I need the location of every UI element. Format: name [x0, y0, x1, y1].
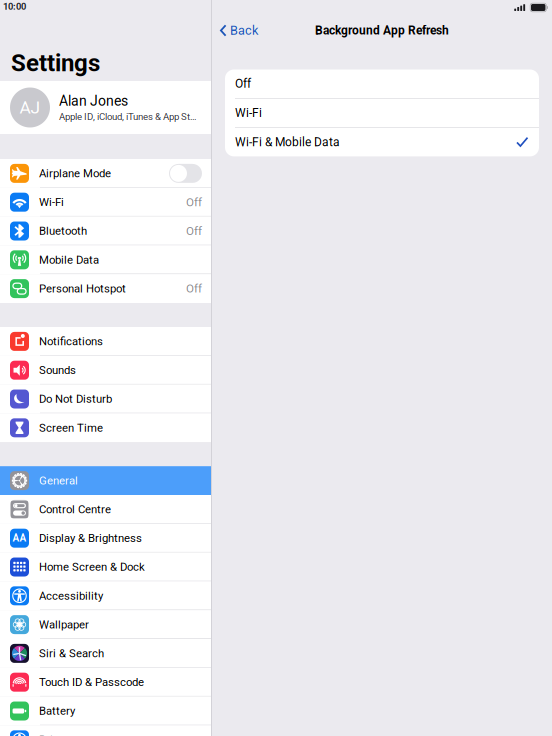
- staticText: Background App Refresh: [315, 23, 449, 38]
- staticText: Off: [186, 282, 202, 295]
- staticText: 10:00: [3, 1, 26, 12]
- staticText: Notifications: [39, 335, 103, 348]
- button[interactable]: Battery: [0, 697, 211, 725]
- staticText: Mobile Data: [39, 253, 99, 266]
- staticText: Bluetooth: [39, 224, 87, 238]
- staticText: Airplane Mode: [39, 167, 111, 180]
- staticText: Wi-Fi & Mobile Data: [235, 135, 340, 149]
- staticText: Control Centre: [39, 503, 111, 516]
- staticText: AA: [12, 532, 26, 544]
- button[interactable]: Privacy: [0, 725, 211, 736]
- staticText: Touch ID & Passcode: [39, 676, 144, 689]
- staticText: AJ: [19, 97, 40, 118]
- button[interactable]: Screen Time: [0, 413, 211, 442]
- staticText: Wi-Fi: [39, 196, 64, 209]
- staticText: Off: [235, 77, 251, 91]
- button[interactable]: Home Screen & Dock: [0, 553, 211, 581]
- staticText: Accessibility: [39, 589, 103, 602]
- button[interactable]: Notifications: [0, 327, 211, 356]
- staticText: Battery: [39, 704, 75, 718]
- button[interactable]: AA: [0, 524, 211, 553]
- button[interactable]: Mobile Data: [0, 245, 211, 274]
- button[interactable]: AJ: [0, 81, 211, 134]
- staticText: Siri & Search: [39, 647, 104, 660]
- button[interactable]: Wallpaper: [0, 610, 211, 639]
- button[interactable]: Sounds: [0, 356, 211, 385]
- button[interactable]: Wi-Fi & Mobile Data: [225, 128, 539, 156]
- button[interactable]: Personal Hotspot: [0, 274, 211, 303]
- staticText: Sounds: [39, 364, 76, 377]
- button[interactable]: Touch ID & Passcode: [0, 668, 211, 697]
- button[interactable]: Wi-Fi: [0, 188, 211, 217]
- staticText: Apple ID, iCloud, iTunes & App St…: [59, 111, 196, 122]
- button[interactable]: Wi-Fi: [225, 99, 539, 127]
- staticText: Wallpaper: [39, 618, 89, 631]
- button[interactable]: Control Centre: [0, 495, 211, 524]
- button[interactable]: Bluetooth: [0, 217, 211, 245]
- staticText: General: [39, 474, 78, 487]
- button[interactable]: Back: [212, 17, 264, 44]
- button[interactable]: Accessibility: [0, 581, 211, 610]
- staticText: Home Screen & Dock: [39, 560, 145, 574]
- button[interactable]: Do Not Disturb: [0, 385, 211, 413]
- staticText: Alan Jones: [59, 93, 128, 109]
- staticText: Settings: [11, 49, 100, 77]
- staticText: Back: [230, 23, 258, 38]
- button[interactable]: Siri & Search: [0, 639, 211, 668]
- staticText: Display & Brightness: [39, 532, 142, 545]
- staticText: Privacy: [39, 733, 75, 736]
- staticText: Screen Time: [39, 421, 103, 434]
- staticText: Wi-Fi: [235, 106, 262, 120]
- button[interactable]: Airplane Mode: [0, 159, 211, 188]
- staticText: Personal Hotspot: [39, 282, 126, 295]
- staticText: Do Not Disturb: [39, 392, 112, 406]
- button[interactable]: Off: [225, 69, 539, 98]
- staticText: Off: [186, 195, 202, 209]
- staticText: Off: [186, 224, 202, 238]
- button[interactable]: General: [0, 466, 211, 495]
